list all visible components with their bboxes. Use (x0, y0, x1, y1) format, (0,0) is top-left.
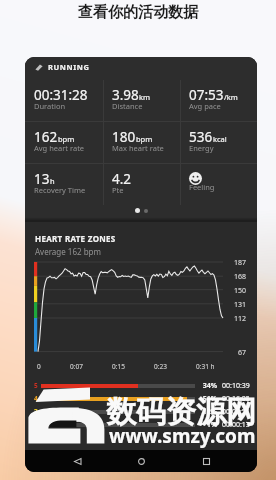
staticText: bpm (136, 134, 153, 144)
staticText: 3 (34, 407, 38, 416)
staticText: 180 (112, 128, 136, 146)
staticText: 51% (200, 394, 217, 404)
staticText: 4.2 (112, 170, 132, 188)
staticText: 00:00:13 (222, 420, 250, 430)
staticText: 5 (34, 381, 38, 390)
staticText: kcal (213, 134, 227, 144)
staticText: 536 (189, 128, 213, 146)
staticText: 0:31 h (196, 362, 215, 371)
staticText: 数码资源网 (106, 393, 256, 431)
button[interactable]: Back (64, 450, 90, 472)
staticText: 12% (200, 407, 217, 417)
staticText: 3.98 (112, 86, 139, 104)
staticText: Pte (112, 185, 124, 195)
staticText: 00:10:39 (222, 381, 250, 391)
staticText: 4 (34, 394, 38, 403)
staticText: Energy (189, 143, 214, 153)
staticText: bpm (58, 134, 75, 144)
staticText: Recovery Time (34, 185, 86, 195)
staticText: 162 (34, 128, 58, 146)
staticText: 0:15 (112, 362, 125, 371)
staticText: 1% (200, 420, 217, 430)
staticText: 00:16:05 (222, 394, 250, 404)
staticText: 00:31:28 (34, 86, 88, 104)
staticText: 150 (234, 286, 247, 296)
staticText: 13 (34, 170, 50, 188)
staticText: 0:23 (154, 362, 167, 371)
staticText: 0 (37, 362, 41, 371)
staticText: 112 (234, 314, 247, 324)
staticText: km (139, 92, 151, 102)
staticText: Avg heart rate (34, 143, 85, 153)
staticText: /km (224, 92, 238, 102)
staticText: www.smzy.com (109, 423, 256, 449)
staticText: 07:53 (189, 86, 224, 104)
staticText: h (50, 176, 55, 186)
staticText: Distance (112, 101, 143, 111)
staticText: 187 (234, 258, 247, 268)
staticText: Duration (34, 101, 66, 111)
staticText: 0:07 (70, 362, 83, 371)
staticText: 34% (200, 381, 217, 391)
button[interactable]: Home (128, 450, 154, 472)
staticText: 131 (234, 300, 247, 310)
staticText: Avg pace (189, 101, 221, 111)
staticText: Feeling (189, 182, 215, 192)
button[interactable]: Recents (193, 450, 219, 472)
staticText: 查看你的活动数据 (0, 3, 276, 22)
staticText: RUNNING (48, 62, 90, 72)
staticText: Max heart rate (112, 143, 164, 153)
staticText: HEART RATE ZONES (35, 233, 116, 244)
staticText: Average 162 bpm (35, 246, 101, 257)
staticText: 168 (234, 272, 247, 282)
staticText: 00:03:51 (222, 407, 250, 417)
staticText: 67 (238, 348, 247, 358)
